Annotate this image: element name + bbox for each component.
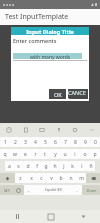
button[interactable]: Emoji: [13, 185, 24, 195]
staticText: 2: [14, 139, 17, 146]
button[interactable]: More options: [87, 125, 96, 134]
staticText: x: [30, 175, 33, 182]
staticText: k: [71, 163, 74, 170]
button[interactable]: GIF: [37, 125, 46, 134]
button[interactable]: Recents: [0, 210, 34, 223]
button[interactable]: m: [76, 173, 86, 183]
staticText: OK: [54, 91, 62, 98]
button[interactable]: b: [56, 173, 66, 183]
staticText: 4: [34, 139, 37, 146]
staticText: 0: [94, 139, 97, 146]
staticText: q: [3, 151, 7, 158]
staticText: m: [79, 175, 84, 182]
button[interactable]: !#1: [0, 185, 13, 195]
button[interactable]: y: [50, 149, 60, 159]
staticText: 1: [4, 139, 7, 146]
button[interactable]: 9: [80, 137, 90, 147]
staticText: Test InputTemplate: [5, 12, 69, 22]
staticText: 7: [64, 139, 67, 146]
staticText: 8: [74, 139, 77, 146]
staticText: d: [26, 163, 30, 170]
staticText: u: [63, 151, 67, 158]
staticText: 9: [84, 139, 87, 146]
button[interactable]: 0: [90, 137, 100, 147]
button[interactable]: x: [26, 173, 36, 183]
staticText: Español (ES): [45, 188, 62, 192]
staticText: h: [53, 163, 57, 170]
button[interactable]: Backspace: [86, 173, 100, 183]
staticText: f: [36, 163, 38, 170]
button[interactable]: k: [68, 161, 77, 171]
button[interactable]: Home: [34, 210, 67, 223]
staticText: v: [50, 175, 53, 182]
button[interactable]: CANCEL: [68, 89, 88, 99]
staticText: with many words: [30, 54, 71, 61]
staticText: i: [74, 151, 76, 158]
button[interactable]: t: [40, 149, 50, 159]
button[interactable]: 4: [30, 137, 40, 147]
button[interactable]: u: [60, 149, 70, 159]
button[interactable]: s: [14, 161, 23, 171]
staticText: Done: [86, 188, 97, 193]
button[interactable]: Voice input: [54, 125, 63, 134]
button[interactable]: w: [10, 149, 20, 159]
button[interactable]: v: [46, 173, 56, 183]
staticText: o: [83, 151, 87, 158]
button[interactable]: OK: [49, 89, 66, 99]
button[interactable]: Settings: [70, 125, 79, 134]
staticText: ,: [28, 187, 30, 194]
button[interactable]: Done: [82, 185, 100, 195]
staticText: s: [17, 163, 20, 170]
staticText: p: [93, 151, 97, 158]
button[interactable]: j: [59, 161, 68, 171]
button[interactable]: 8: [70, 137, 80, 147]
button[interactable]: 6: [50, 137, 60, 147]
button[interactable]: g: [41, 161, 50, 171]
button[interactable]: 1: [0, 137, 10, 147]
button[interactable]: c: [36, 173, 46, 183]
button[interactable]: Back: [67, 210, 100, 223]
staticText: l: [81, 163, 83, 170]
staticText: Input Dialog Title: [26, 28, 74, 35]
button[interactable]: with many words: [13, 53, 87, 61]
button[interactable]: o: [80, 149, 90, 159]
button[interactable]: i: [70, 149, 80, 159]
staticText: 5: [44, 139, 47, 146]
staticText: b: [59, 175, 63, 182]
staticText: a: [8, 163, 11, 170]
button[interactable]: 7: [60, 137, 70, 147]
button[interactable]: a: [5, 161, 14, 171]
staticText: j: [63, 163, 65, 170]
staticText: !#1: [4, 188, 10, 193]
staticText: n: [69, 175, 73, 182]
button[interactable]: e: [20, 149, 30, 159]
button[interactable]: Stickers: [4, 125, 13, 134]
button[interactable]: p: [90, 149, 100, 159]
button[interactable]: Test InputTemplate: [0, 9, 100, 25]
button[interactable]: Clipboard: [21, 125, 30, 134]
button[interactable]: 5: [40, 137, 50, 147]
button[interactable]: ñ: [86, 161, 95, 171]
staticText: Enter comments: [13, 37, 57, 44]
staticText: 3: [24, 139, 27, 146]
button[interactable]: q: [0, 149, 10, 159]
staticText: ñ: [89, 163, 93, 170]
button[interactable]: ,: [24, 185, 34, 195]
button[interactable]: Shift: [0, 173, 15, 183]
button[interactable]: .: [72, 185, 82, 195]
button[interactable]: d: [23, 161, 32, 171]
button[interactable]: l: [77, 161, 86, 171]
button[interactable]: n: [66, 173, 76, 183]
staticText: z: [19, 175, 22, 182]
button[interactable]: h: [50, 161, 59, 171]
button[interactable]: r: [30, 149, 40, 159]
staticText: .: [76, 187, 78, 194]
button[interactable]: Español (ES): [34, 185, 72, 195]
button[interactable]: 2: [10, 137, 20, 147]
staticText: 6: [54, 139, 57, 146]
button[interactable]: 3: [20, 137, 30, 147]
staticText: CANCEL: [68, 89, 88, 99]
staticText: t: [44, 151, 46, 158]
button[interactable]: z: [15, 173, 26, 183]
button[interactable]: f: [32, 161, 41, 171]
